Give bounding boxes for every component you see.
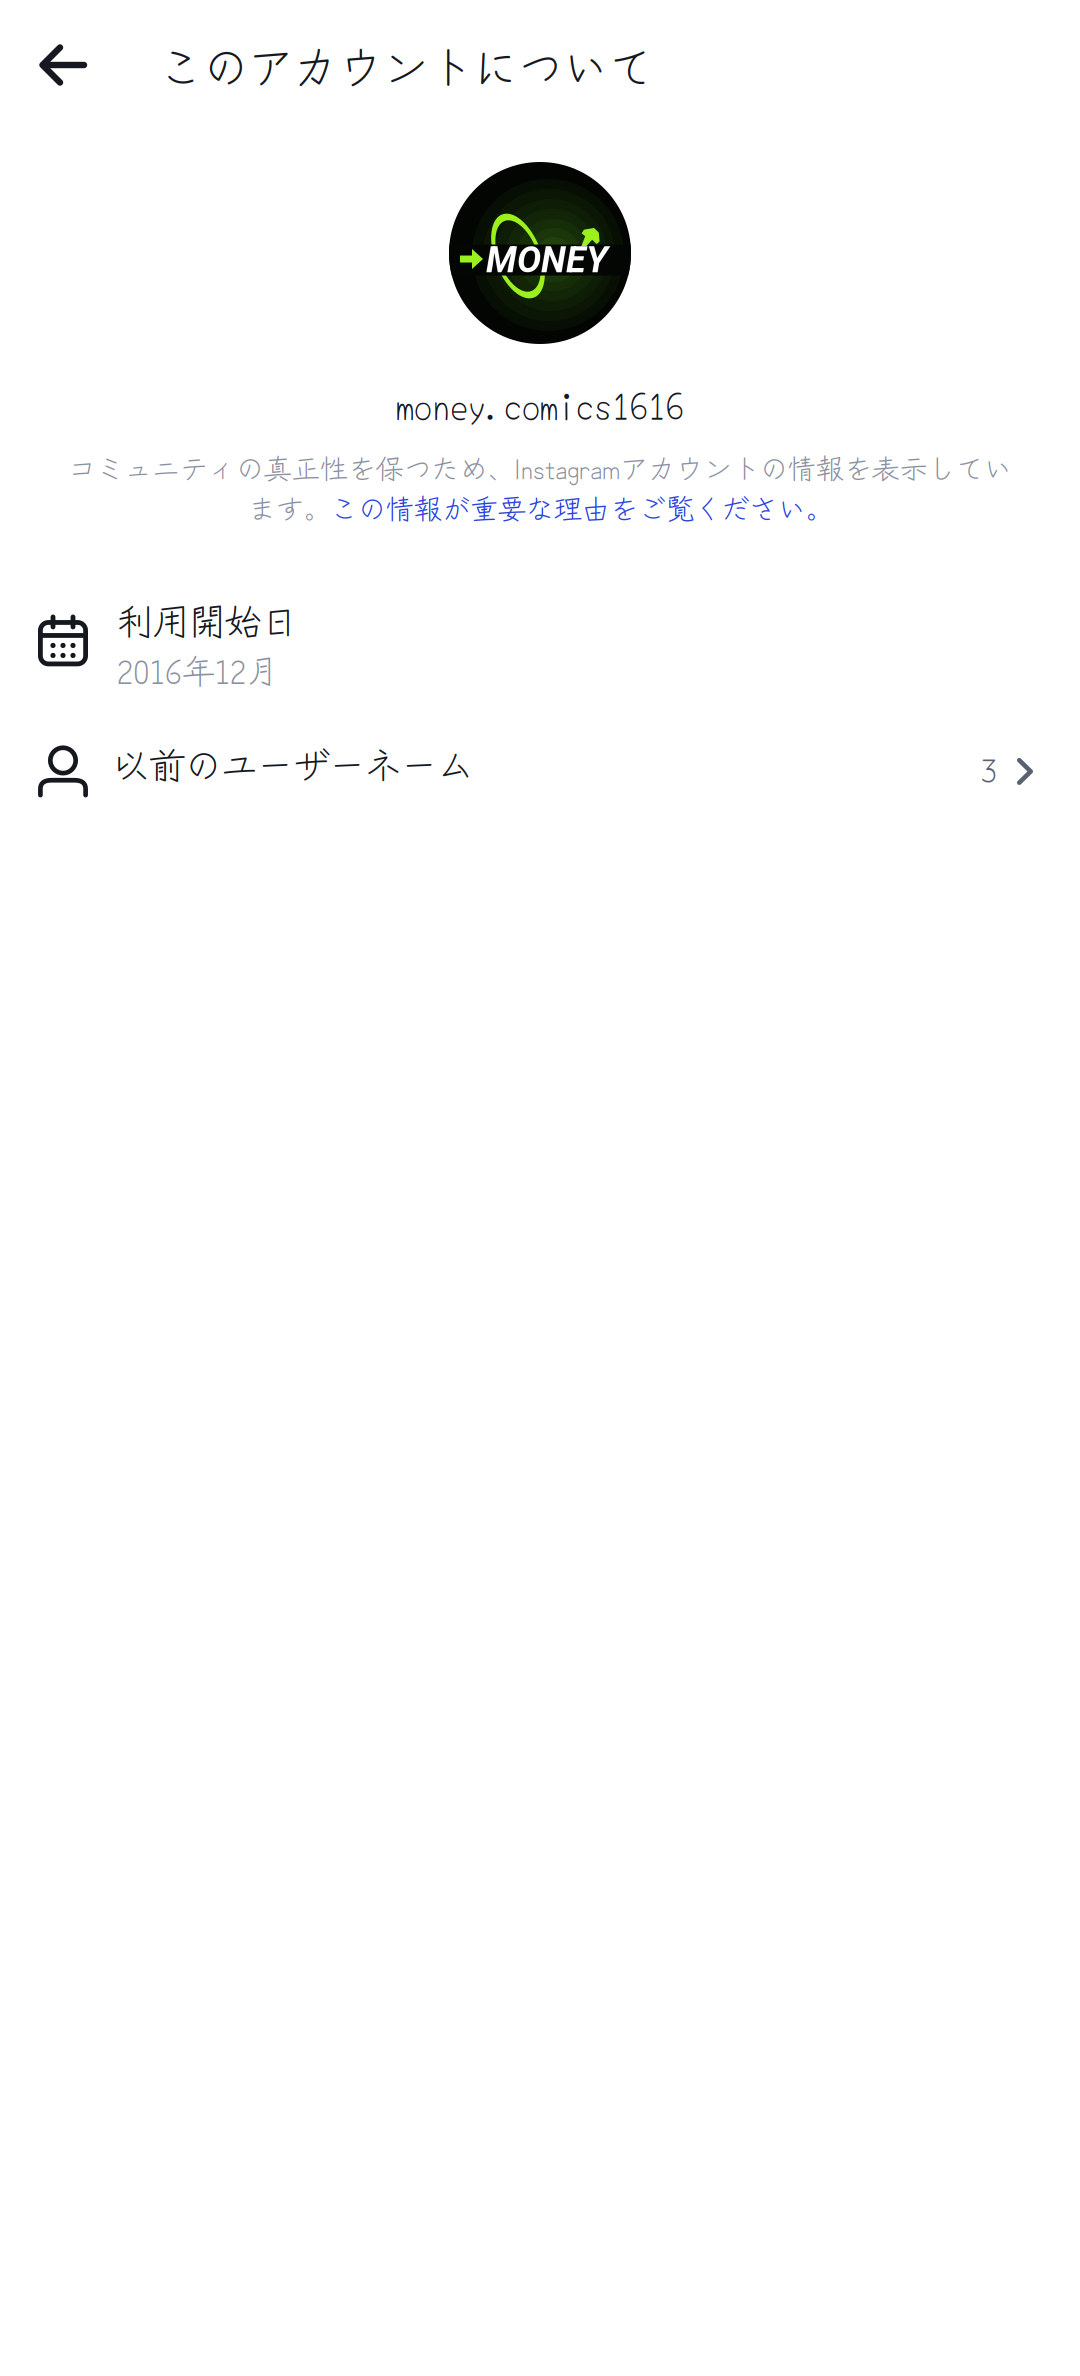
staticText: 利用開始日 bbox=[117, 593, 297, 646]
staticText: MONEY bbox=[486, 239, 608, 281]
staticText: 以前のユーザーネーム bbox=[113, 737, 473, 790]
staticText: ます。 bbox=[248, 487, 330, 527]
staticText: このアカウントについて bbox=[158, 32, 653, 98]
button[interactable]: 戻る bbox=[0, 0, 158, 130]
staticText: money.comics1616 bbox=[396, 378, 684, 430]
staticText: コミュニティの真正性を保つため、Instagramアカウントの情報を表示してい bbox=[68, 447, 1012, 487]
button[interactable]: 以前のユーザーネーム bbox=[0, 720, 1080, 806]
staticText: この情報が重要な理由をご覧ください。 bbox=[330, 487, 832, 527]
staticText: 3 bbox=[981, 745, 997, 792]
button[interactable]: この情報が重要な理由をご覧ください。 bbox=[330, 487, 832, 527]
staticText: 2016年12月 bbox=[117, 646, 279, 693]
